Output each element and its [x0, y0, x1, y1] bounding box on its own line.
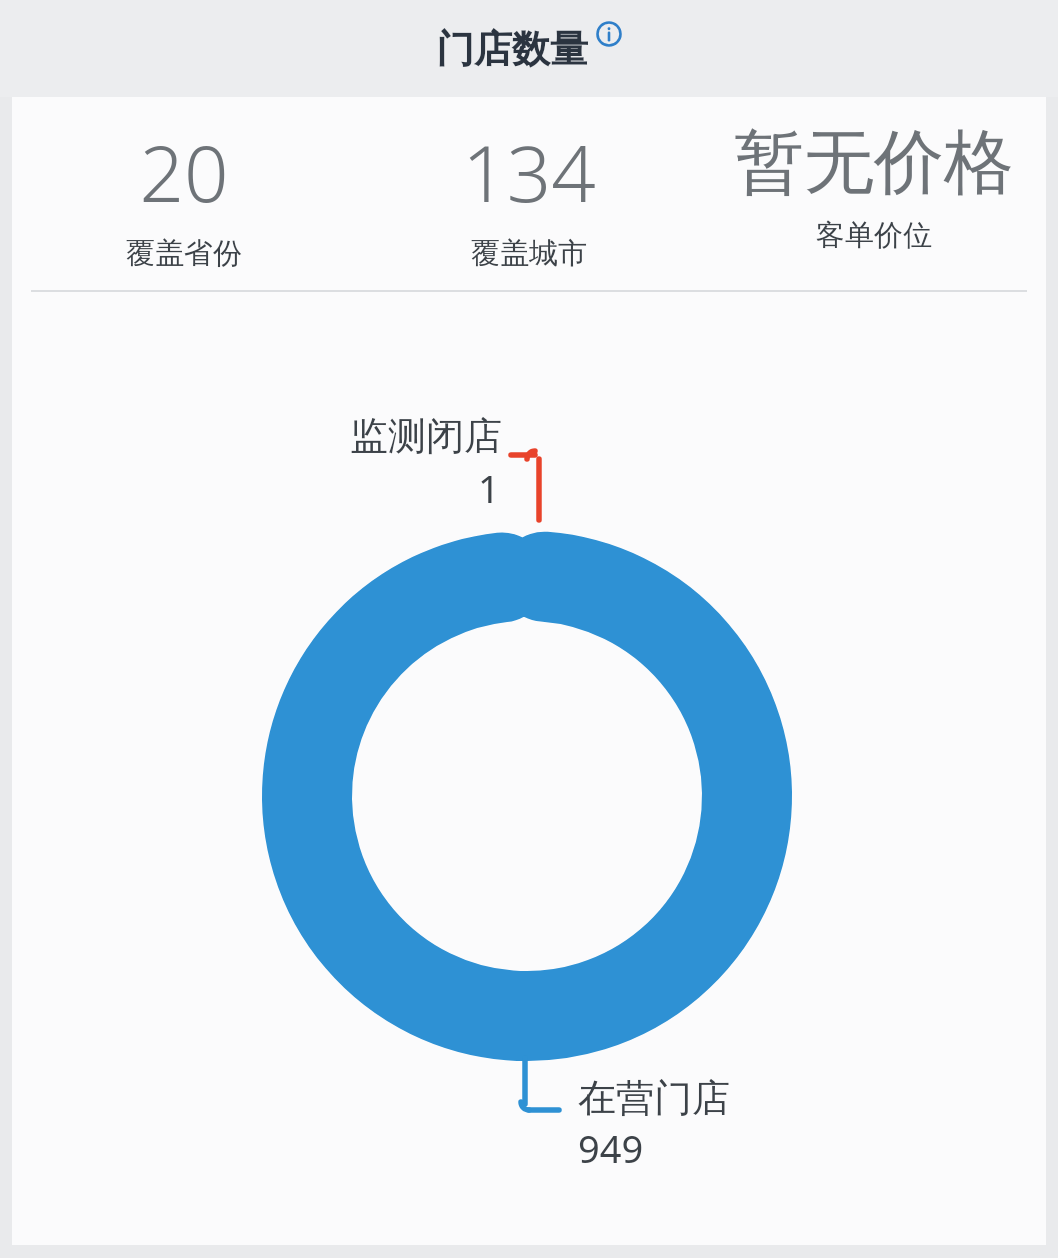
staticText: 在营门店: [578, 1074, 730, 1122]
button[interactable]: 门店数量: [436, 25, 622, 73]
staticText: 20: [139, 119, 229, 225]
staticText: 134: [462, 119, 596, 225]
staticText: 暂无价格: [734, 119, 1014, 207]
staticText: 监测闭店: [350, 412, 502, 460]
button[interactable]: 20: [12, 97, 356, 272]
staticText: 覆盖城市: [471, 235, 587, 272]
staticText: 客单价位: [816, 217, 932, 254]
button[interactable]: 暂无价格: [701, 97, 1046, 254]
button[interactable]: 监测闭店: [350, 412, 502, 512]
button[interactable]: 134: [356, 97, 701, 272]
staticText: 949: [578, 1122, 644, 1174]
button[interactable]: Info: [596, 21, 622, 47]
staticText: 覆盖省份: [126, 235, 242, 272]
staticText: 1: [478, 462, 500, 514]
staticText: 门店数量: [436, 25, 588, 73]
button[interactable]: 在营门店: [578, 1074, 730, 1174]
